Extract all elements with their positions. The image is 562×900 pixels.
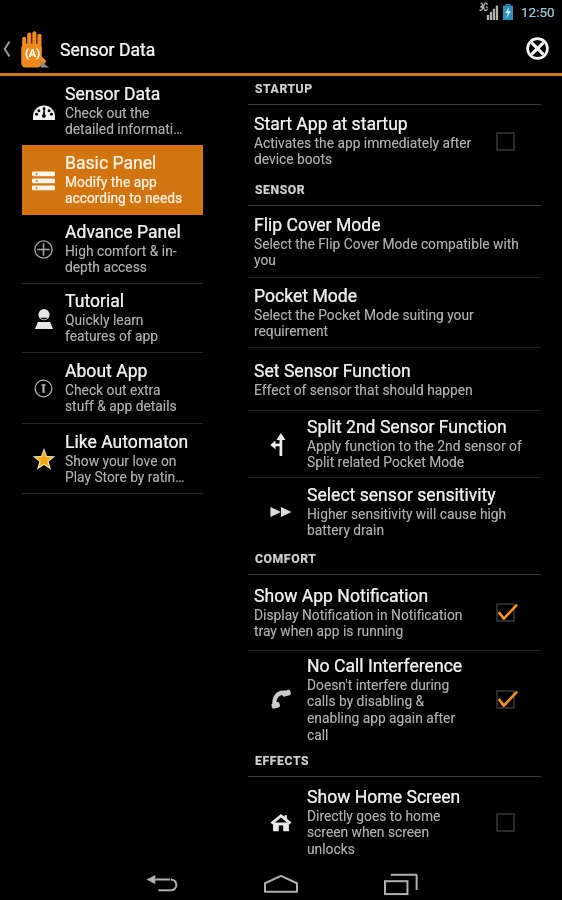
button[interactable]: Flip Cover Mode	[230, 206, 562, 277]
button[interactable]: Navigate up	[0, 24, 61, 73]
staticText: Doesn't interfere during calls by disabl…	[307, 677, 456, 744]
button[interactable]: Split 2nd Sensor Function	[230, 411, 562, 477]
staticText: High comfort & in- depth access	[65, 243, 177, 276]
button[interactable]: Home	[255, 867, 307, 900]
staticText: Show App Notification	[254, 586, 429, 607]
staticText: Set Sensor Function	[254, 361, 411, 382]
staticText: Effect of sensor that should happen	[254, 382, 473, 398]
button[interactable]: Advance Panel	[22, 215, 203, 283]
staticText: No Call Interference	[307, 656, 463, 677]
staticText: Check out the detailed informati…	[65, 105, 183, 138]
button[interactable]: Basic Panel	[22, 145, 203, 215]
button[interactable]: Recent apps	[375, 867, 427, 900]
button[interactable]: Show Home Screen	[230, 777, 562, 867]
staticText: Basic Panel	[65, 153, 157, 174]
staticText: Show Home Screen	[307, 787, 461, 808]
staticText: Start App at startup	[254, 114, 408, 135]
staticText: EFFECTS	[255, 754, 310, 768]
button[interactable]: Back	[135, 867, 187, 900]
staticText: Advance Panel	[65, 222, 181, 243]
staticText: STARTUP	[255, 82, 313, 96]
button[interactable]: Pocket Mode	[230, 278, 562, 347]
staticText: Sensor Data	[60, 40, 156, 61]
staticText: COMFORT	[255, 552, 317, 566]
staticText: (A)	[25, 47, 41, 60]
button[interactable]: Select sensor sensitivity	[230, 478, 562, 546]
staticText: Directly goes to home screen when screen…	[307, 808, 441, 858]
button[interactable]: Set Sensor Function	[230, 348, 562, 410]
button[interactable]: Sensor Data	[22, 76, 203, 145]
button[interactable]: Close	[512, 24, 562, 73]
button[interactable]: Like Automaton	[22, 424, 203, 493]
staticText: Modify the app according to needs	[65, 174, 183, 207]
staticText: Tutorial	[65, 291, 125, 312]
staticText: Like Automaton	[65, 432, 189, 453]
button[interactable]: About App	[22, 353, 203, 423]
staticText: Select sensor sensitivity	[307, 485, 496, 506]
button[interactable]: Start App at startup	[230, 105, 562, 177]
staticText: Split 2nd Sensor Function	[307, 417, 507, 438]
staticText: Flip Cover Mode	[254, 215, 381, 236]
staticText: Higher sensitivity will cause high batte…	[307, 506, 507, 539]
staticText: Quickly learn features of app	[65, 312, 159, 345]
button[interactable]: Tutorial	[22, 284, 203, 352]
staticText: About App	[65, 361, 148, 382]
button[interactable]: Show App Notification	[230, 575, 562, 650]
staticText: Apply function to the 2nd sensor of Spli…	[307, 438, 522, 471]
button[interactable]: No Call Interference	[230, 651, 562, 748]
staticText: Show your love on Play Store by ratin…	[65, 453, 185, 486]
staticText: SENSOR	[255, 183, 306, 197]
staticText: Activates the app immediately after devi…	[254, 135, 472, 168]
staticText: Check out extra stuff & app details	[65, 382, 177, 415]
staticText: Display Notification in Notification tra…	[254, 607, 463, 640]
staticText: Select the Flip Cover Mode compatible wi…	[254, 236, 519, 269]
staticText: Pocket Mode	[254, 286, 358, 307]
staticText: Select the Pocket Mode suiting your requ…	[254, 307, 474, 340]
staticText: Sensor Data	[65, 84, 161, 105]
staticText: 12:50	[521, 4, 555, 20]
